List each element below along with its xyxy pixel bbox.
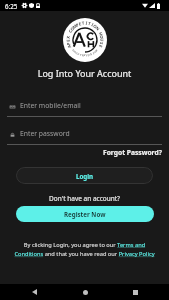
button[interactable]: Recent apps — [118, 284, 152, 300]
button[interactable]: Home — [68, 284, 102, 300]
staticText: Register Now — [64, 210, 106, 218]
staticText: Log Into Your Account — [0, 67, 169, 79]
staticText: Forgot Password? — [103, 148, 162, 157]
staticText: 6:25 — [5, 2, 18, 10]
staticText: Don't have an account? — [0, 194, 169, 203]
button[interactable]: Login — [16, 167, 153, 184]
button[interactable]: Forgot Password? — [103, 148, 162, 157]
staticText: By clicking Login, you agree to our Term… — [11, 241, 158, 258]
staticText: Login — [76, 172, 94, 180]
staticText: Enter password — [20, 129, 70, 138]
button[interactable]: Register Now — [16, 206, 154, 222]
button[interactable]: Back — [17, 284, 51, 300]
staticText: Enter mobile/email — [20, 101, 81, 110]
